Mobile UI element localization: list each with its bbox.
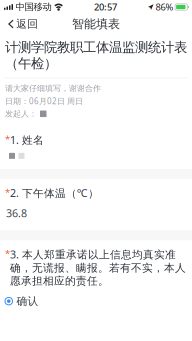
staticText: 3. 本人郑重承诺以上信息均真实准确，无谎报、瞒报。若有不实，本人愿承担相应的责… [10,247,186,288]
staticText: 36.8 [6,206,27,220]
staticText: * [5,133,10,145]
staticText: * [5,247,10,260]
button[interactable]: 确认 [5,288,187,308]
staticText: 确认 [16,295,38,308]
staticText: 计测学院教职工体温监测统计表（午检） [5,39,187,72]
staticText: * [5,186,10,198]
staticText: 请大家仔细填写，谢谢合作 [5,83,101,93]
staticText: 发起人： [5,109,37,119]
staticText: 智能填表 [72,17,120,31]
staticText: 86% [155,1,173,13]
staticText: 返回 [16,17,38,30]
staticText: 1. 姓名 [10,133,44,147]
staticText: 日期：06月02日 周日 [5,96,83,106]
staticText: 2. 下午体温（℃） [10,186,99,200]
staticText: 20:57 [94,1,117,13]
staticText: 中国移动 [15,1,51,13]
button[interactable]: 返回 [0,14,44,33]
